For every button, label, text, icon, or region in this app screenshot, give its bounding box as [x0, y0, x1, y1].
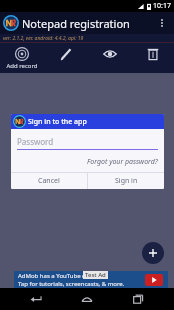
staticText: Test Ad [85, 271, 106, 279]
staticText: Cancel [38, 176, 60, 186]
button[interactable]: Edit [44, 45, 88, 63]
button[interactable]: Delete [132, 45, 174, 63]
button[interactable]: Add [142, 242, 164, 264]
button[interactable]: Forgot your password? [87, 157, 158, 167]
button[interactable]: More options [153, 14, 171, 32]
button[interactable]: Cancel [11, 173, 87, 189]
button[interactable]: View [88, 45, 132, 63]
staticText: 10:17 [153, 1, 171, 11]
staticText: ver: 2.1.2, ver. android: 4.4.2, api: 19 [3, 35, 84, 42]
staticText: Sign in to the app [28, 117, 87, 127]
staticText: Tap for tutorials, screencasts, & more. [18, 280, 125, 288]
button[interactable]: Sign in [88, 173, 164, 189]
button[interactable]: Add record [0, 45, 44, 72]
button[interactable]: Recent apps [123, 288, 153, 310]
staticText: Sign in [115, 176, 138, 186]
button[interactable]: AdMob has a YouTube channel! [14, 271, 168, 288]
button[interactable]: Home [72, 288, 102, 310]
staticText: Notepad registration [22, 16, 130, 31]
staticText: Password [17, 136, 54, 147]
staticText: Add record [6, 62, 38, 70]
button[interactable]: Back [21, 288, 51, 310]
staticText: AdMob has a YouTube channel! [18, 272, 107, 280]
